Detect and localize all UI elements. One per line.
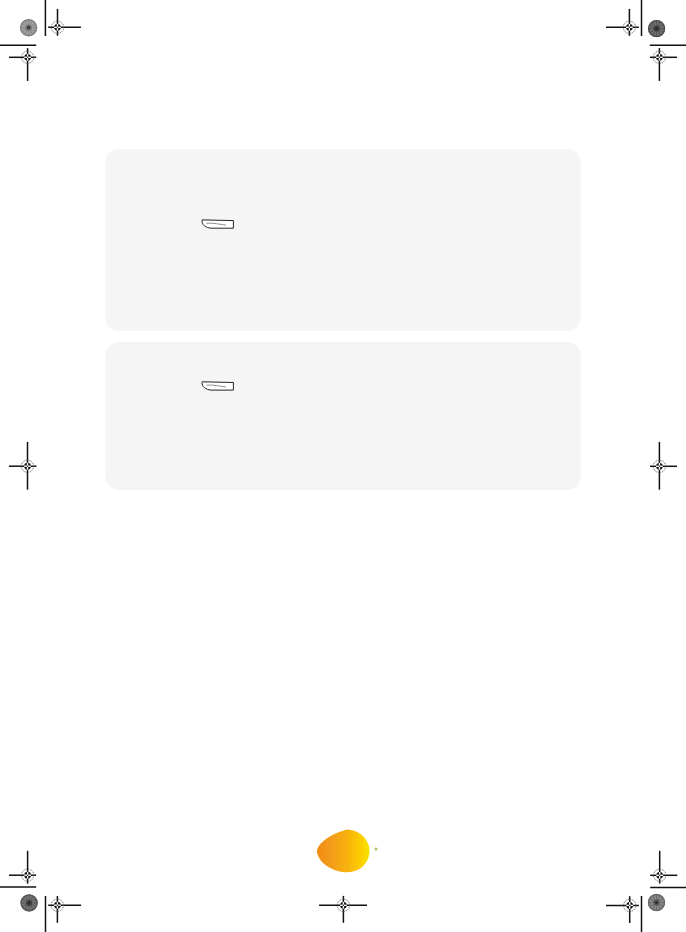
button[interactable]: Mango [310, 823, 380, 879]
button[interactable]: Second panel [105, 342, 581, 490]
button[interactable]: First panel [105, 149, 581, 331]
